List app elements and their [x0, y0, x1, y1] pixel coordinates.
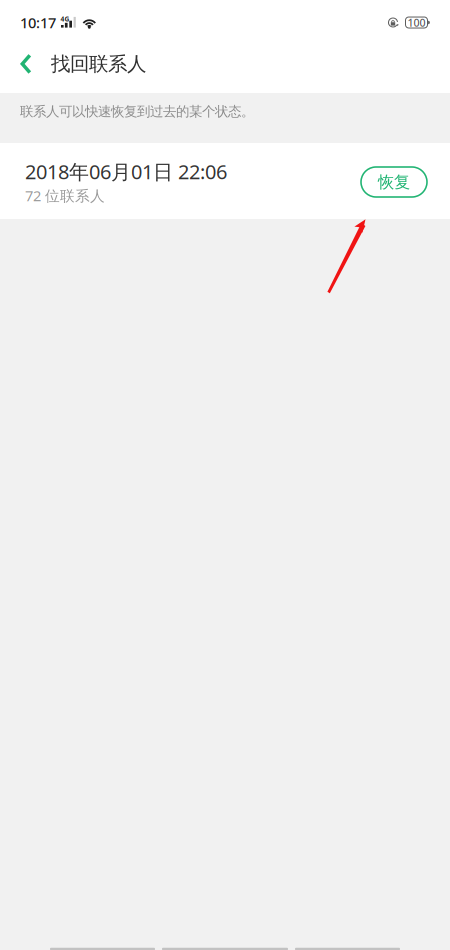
staticText: 100	[407, 15, 425, 30]
staticText: 4G	[60, 14, 69, 23]
staticText: 72 位联系人	[25, 185, 105, 205]
button[interactable]: Back	[8, 42, 44, 86]
button[interactable]: 2018年06月01日 22:06	[0, 144, 450, 220]
staticText: 2018年06月01日 22:06	[25, 158, 227, 185]
staticText: 10:17	[20, 13, 56, 32]
staticText: 联系人可以快速恢复到过去的某个状态。	[20, 103, 254, 120]
staticText: 找回联系人	[51, 52, 146, 76]
staticText: 恢复	[378, 172, 410, 192]
